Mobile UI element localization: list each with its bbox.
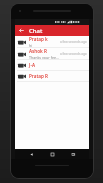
button[interactable]: Back (17, 26, 26, 35)
staticText: Thanks your feedback (29, 55, 59, 59)
button[interactable]: Home (47, 149, 57, 159)
button[interactable]: Pratap R (15, 71, 89, 82)
staticText: hi (29, 43, 33, 47)
button[interactable]: Recent apps (68, 149, 78, 159)
button[interactable]: Ashok R (15, 48, 89, 60)
button[interactable]: Back (26, 149, 36, 159)
staticText: a few seconds ago (60, 40, 87, 44)
staticText: Pratap k (29, 36, 48, 42)
staticText: a few seconds ago (60, 52, 87, 56)
staticText: Chat (29, 27, 43, 35)
staticText: J-A (29, 62, 35, 68)
staticText: Pratap R (29, 73, 48, 79)
button[interactable]: Pratap k (15, 36, 89, 48)
button[interactable]: J-A (15, 60, 89, 71)
staticText: Ashok R (29, 48, 47, 54)
